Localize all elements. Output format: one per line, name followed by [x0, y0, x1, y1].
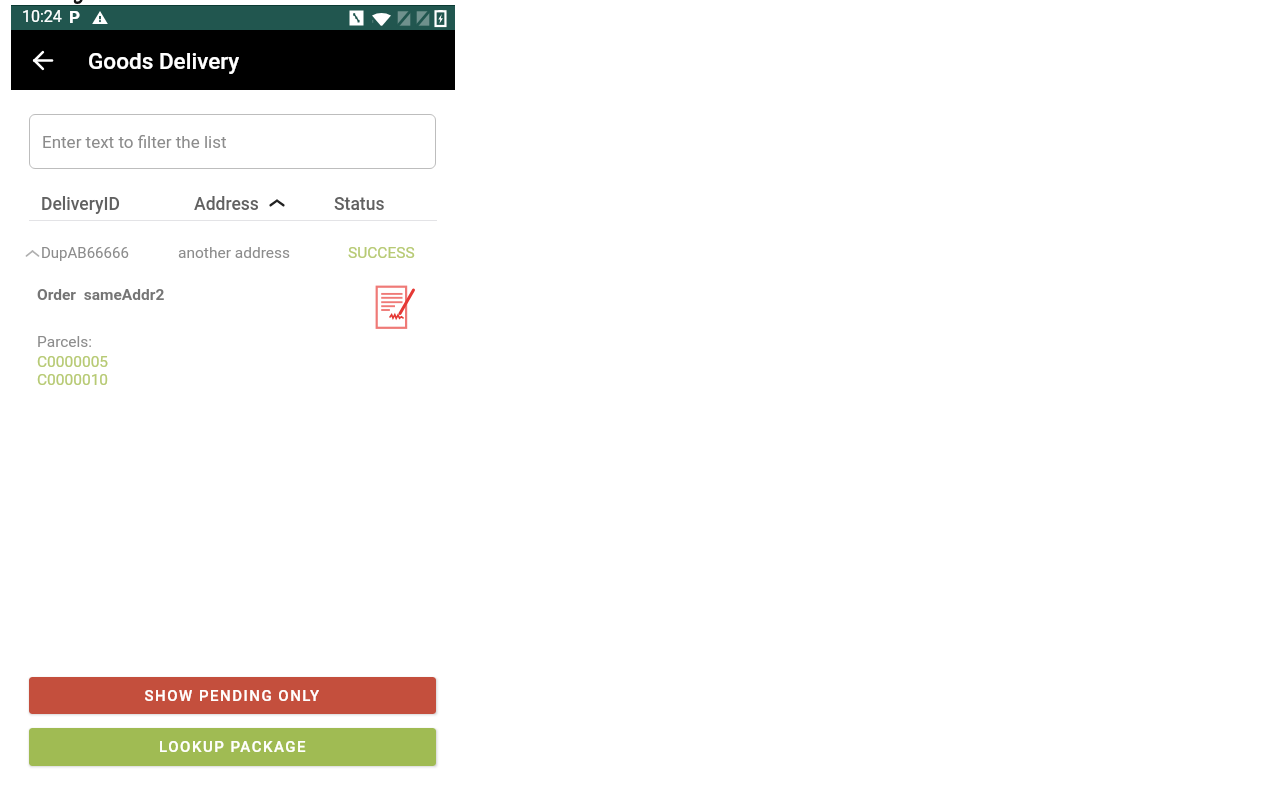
staticText: C0000010: [37, 371, 109, 389]
button[interactable]: SHOW PENDING ONLY: [29, 677, 436, 714]
staticText: 10:24: [22, 7, 62, 26]
staticText: C0000005: [37, 353, 109, 371]
button[interactable]: Status: [309, 186, 436, 222]
staticText: Parcels:: [37, 333, 93, 351]
button[interactable]: DupAB66666: [29, 237, 436, 269]
staticText: another address: [178, 244, 290, 262]
staticText: Enter text to filter the list: [42, 132, 227, 152]
button[interactable]: Back: [21, 39, 64, 82]
button[interactable]: Enter text to filter the list: [29, 114, 436, 169]
staticText: Address: [194, 194, 259, 215]
button[interactable]: Signature: [347, 283, 399, 335]
staticText: DupAB66666: [41, 244, 129, 262]
staticText: Order sameAddr2: [37, 286, 165, 304]
staticText: Goods Delivery: [88, 48, 240, 74]
staticText: LOOKUP PACKAGE: [159, 738, 307, 756]
button[interactable]: DeliveryID: [29, 186, 169, 222]
button[interactable]: LOOKUP PACKAGE: [29, 728, 436, 766]
staticText: SHOW PENDING ONLY: [144, 687, 321, 705]
button[interactable]: Address: [169, 186, 309, 222]
staticText: P: [69, 7, 80, 27]
staticText: Status: [334, 194, 385, 215]
staticText: DeliveryID: [41, 194, 120, 215]
staticText: SUCCESS: [348, 244, 415, 262]
